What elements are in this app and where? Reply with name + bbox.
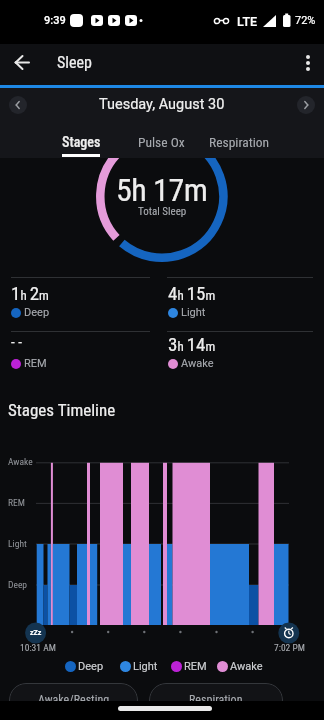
- staticText: Light: [181, 306, 206, 319]
- button[interactable]: Pulse Ox: [130, 126, 192, 158]
- staticText: Deep: [8, 579, 28, 590]
- staticText: Stages Timeline: [8, 400, 116, 420]
- staticText: Light: [133, 660, 158, 673]
- staticText: Respiration: [189, 693, 243, 707]
- staticText: 72%: [295, 14, 316, 27]
- button[interactable]: [292, 47, 324, 79]
- staticText: 7:02 PM: [274, 642, 305, 653]
- staticText: 3h 14m: [168, 333, 216, 355]
- staticText: zZz: [30, 629, 42, 637]
- staticText: REM: [24, 357, 47, 370]
- button[interactable]: Respiration: [200, 126, 278, 158]
- staticText: 4h 15m: [168, 282, 216, 304]
- staticText: REM: [8, 497, 25, 508]
- button[interactable]: [297, 96, 315, 114]
- staticText: 5h 17m: [116, 171, 208, 209]
- staticText: Sleep: [57, 53, 92, 72]
- staticText: REM: [184, 660, 207, 673]
- staticText: Tuesday, August 30: [99, 96, 225, 113]
- staticText: 9:39: [44, 14, 66, 27]
- staticText: Awake: [181, 357, 214, 370]
- staticText: 1h 2m: [11, 282, 49, 304]
- staticText: Pulse Ox: [138, 134, 185, 150]
- staticText: 10:31 AM: [20, 642, 56, 653]
- staticText: Respiration: [209, 134, 270, 150]
- button[interactable]: Respiration: [149, 683, 283, 717]
- staticText: LTE: [237, 14, 258, 29]
- button[interactable]: Stages: [52, 126, 110, 158]
- staticText: - -: [11, 333, 22, 351]
- staticText: Light: [8, 538, 27, 549]
- button[interactable]: [4, 44, 42, 82]
- button[interactable]: Awake/Resting: [9, 683, 138, 717]
- staticText: Deep: [24, 306, 50, 319]
- staticText: Awake: [230, 660, 263, 673]
- staticText: Stages: [62, 134, 101, 150]
- button[interactable]: [9, 96, 27, 114]
- staticText: Total Sleep: [138, 205, 187, 218]
- staticText: Awake: [8, 456, 33, 467]
- staticText: Deep: [78, 660, 104, 673]
- staticText: Awake/Resting: [38, 693, 110, 707]
